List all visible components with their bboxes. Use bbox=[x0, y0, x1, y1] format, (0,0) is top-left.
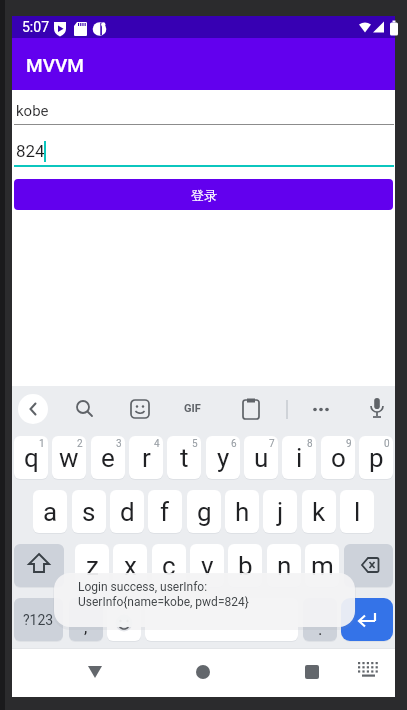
staticText: g bbox=[197, 497, 212, 527]
staticText: e bbox=[101, 443, 115, 473]
button[interactable] bbox=[14, 544, 64, 587]
button[interactable]: l bbox=[340, 490, 374, 533]
staticText: 5:07 bbox=[22, 19, 49, 35]
staticText: u bbox=[254, 443, 269, 473]
staticText: i bbox=[296, 443, 303, 473]
staticText: a bbox=[43, 497, 58, 527]
staticText: p bbox=[369, 443, 384, 473]
button[interactable]: a bbox=[33, 490, 67, 533]
button[interactable] bbox=[125, 394, 155, 424]
button[interactable] bbox=[183, 652, 223, 692]
staticText: y bbox=[217, 443, 230, 473]
staticText: l bbox=[354, 497, 361, 527]
staticText: 7 bbox=[269, 438, 275, 450]
staticText: MVVM bbox=[26, 54, 84, 76]
staticText: o bbox=[331, 443, 346, 473]
staticText: 5 bbox=[192, 438, 198, 450]
button[interactable]: m bbox=[305, 544, 339, 587]
button[interactable]: y bbox=[206, 436, 240, 479]
button[interactable]: k bbox=[302, 490, 336, 533]
button[interactable]: z bbox=[75, 544, 109, 587]
staticText: h bbox=[235, 497, 250, 527]
button[interactable]: j bbox=[263, 490, 297, 533]
button[interactable] bbox=[75, 652, 115, 692]
staticText: q bbox=[24, 443, 39, 473]
button[interactable]: ?123 bbox=[14, 598, 63, 641]
button[interactable]: q bbox=[14, 436, 48, 479]
button[interactable]: s bbox=[72, 490, 106, 533]
button[interactable] bbox=[68, 394, 98, 424]
staticText: 824 bbox=[16, 141, 45, 161]
button[interactable]: w bbox=[52, 436, 86, 479]
staticText: f bbox=[160, 497, 170, 527]
button[interactable]: f bbox=[148, 490, 182, 533]
staticText: j bbox=[277, 497, 284, 527]
staticText: b bbox=[238, 551, 253, 581]
button[interactable]: . bbox=[303, 598, 337, 641]
button[interactable]: v bbox=[190, 544, 224, 587]
staticText: 4 bbox=[154, 438, 160, 450]
button[interactable]: b bbox=[228, 544, 262, 587]
staticText: 登录 bbox=[191, 187, 217, 203]
button[interactable]: o bbox=[321, 436, 355, 479]
staticText: ?123 bbox=[23, 612, 54, 628]
button[interactable] bbox=[236, 394, 266, 424]
button[interactable]: 登录 bbox=[14, 179, 393, 210]
button[interactable]: 824 bbox=[12, 134, 395, 165]
staticText: 1 bbox=[39, 438, 45, 450]
staticText: n bbox=[277, 551, 292, 581]
staticText: v bbox=[201, 551, 214, 581]
staticText: 9 bbox=[346, 438, 352, 450]
button[interactable] bbox=[107, 598, 141, 641]
staticText: c bbox=[162, 551, 176, 581]
button[interactable]: c bbox=[152, 544, 186, 587]
staticText: x bbox=[124, 551, 137, 581]
staticText: 0 bbox=[384, 438, 390, 450]
button[interactable] bbox=[306, 394, 336, 424]
staticText: r bbox=[142, 443, 151, 473]
staticText: k bbox=[312, 497, 326, 527]
staticText: . bbox=[318, 619, 323, 639]
button[interactable]: kobe bbox=[12, 90, 395, 125]
staticText: kobe bbox=[16, 102, 49, 120]
button[interactable] bbox=[341, 598, 393, 641]
button[interactable]: g bbox=[187, 490, 221, 533]
button[interactable]: i bbox=[282, 436, 316, 479]
button[interactable]: p bbox=[359, 436, 393, 479]
staticText: d bbox=[120, 497, 135, 527]
staticText: 2 bbox=[77, 438, 83, 450]
staticText: , bbox=[84, 617, 88, 637]
button[interactable]: u bbox=[244, 436, 278, 479]
button[interactable]: , bbox=[69, 598, 103, 641]
button[interactable] bbox=[18, 394, 48, 424]
staticText: w bbox=[59, 443, 79, 473]
staticText: 3 bbox=[116, 438, 122, 450]
button[interactable]: t bbox=[167, 436, 201, 479]
button[interactable]: e bbox=[91, 436, 125, 479]
staticText: m bbox=[311, 551, 334, 581]
button[interactable] bbox=[180, 394, 210, 424]
staticText: 8 bbox=[307, 438, 313, 450]
button[interactable]: r bbox=[129, 436, 163, 479]
button[interactable]: x bbox=[113, 544, 147, 587]
button[interactable] bbox=[292, 652, 332, 692]
button[interactable] bbox=[348, 652, 388, 692]
button[interactable] bbox=[145, 598, 298, 641]
button[interactable]: h bbox=[225, 490, 259, 533]
button[interactable] bbox=[344, 544, 393, 587]
staticText: Login success, userInfo: UserInfo{name=k… bbox=[78, 580, 249, 609]
staticText: 6 bbox=[231, 438, 237, 450]
staticText: t bbox=[180, 443, 189, 473]
button[interactable]: n bbox=[267, 544, 301, 587]
button[interactable]: d bbox=[110, 490, 144, 533]
staticText: GIF bbox=[184, 402, 201, 415]
button[interactable] bbox=[362, 394, 392, 424]
staticText: z bbox=[86, 551, 99, 581]
staticText: s bbox=[82, 497, 96, 527]
